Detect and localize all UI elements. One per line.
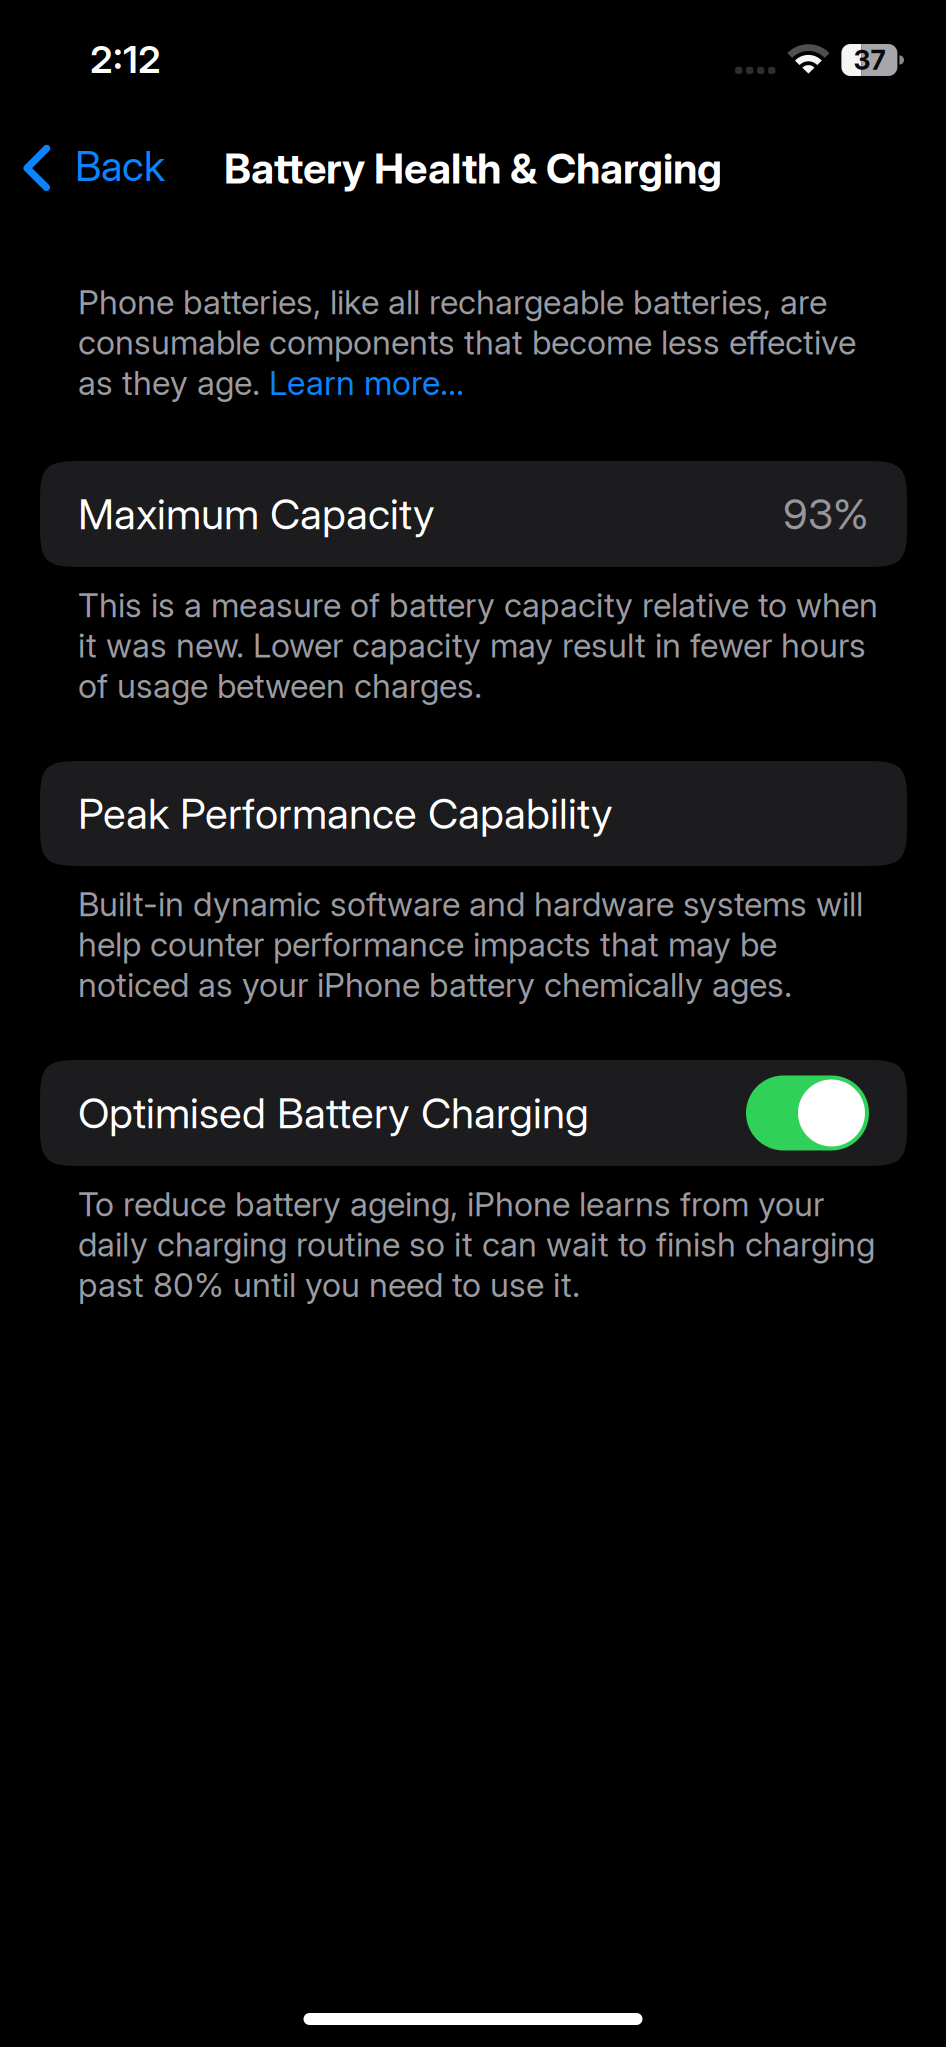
button[interactable]: Phone batteries, like all rechargeable b… (78, 282, 884, 403)
staticText: To reduce battery ageing, iPhone learns … (78, 1184, 875, 1305)
button[interactable]: Peak Performance Capability (40, 761, 907, 866)
staticText: Maximum Capacity (78, 489, 435, 539)
staticText: Battery Health & Charging (224, 143, 722, 193)
button[interactable]: Maximum Capacity (40, 461, 907, 567)
button[interactable]: Optimised Battery Charging, on (746, 1075, 869, 1150)
staticText: 37 (853, 44, 885, 76)
staticText: Optimised Battery Charging (78, 1088, 589, 1138)
staticText: This is a measure of battery capacity re… (78, 585, 878, 706)
staticText: Phone batteries, like all rechargeable b… (78, 282, 856, 403)
staticText: Back (75, 141, 165, 191)
staticText: Peak Performance Capability (78, 788, 613, 839)
staticText: Built-in dynamic software and hardware s… (78, 884, 863, 1005)
staticText: 93% (783, 489, 869, 539)
staticText: 2:12 (90, 36, 161, 82)
button[interactable]: Back (0, 108, 189, 208)
